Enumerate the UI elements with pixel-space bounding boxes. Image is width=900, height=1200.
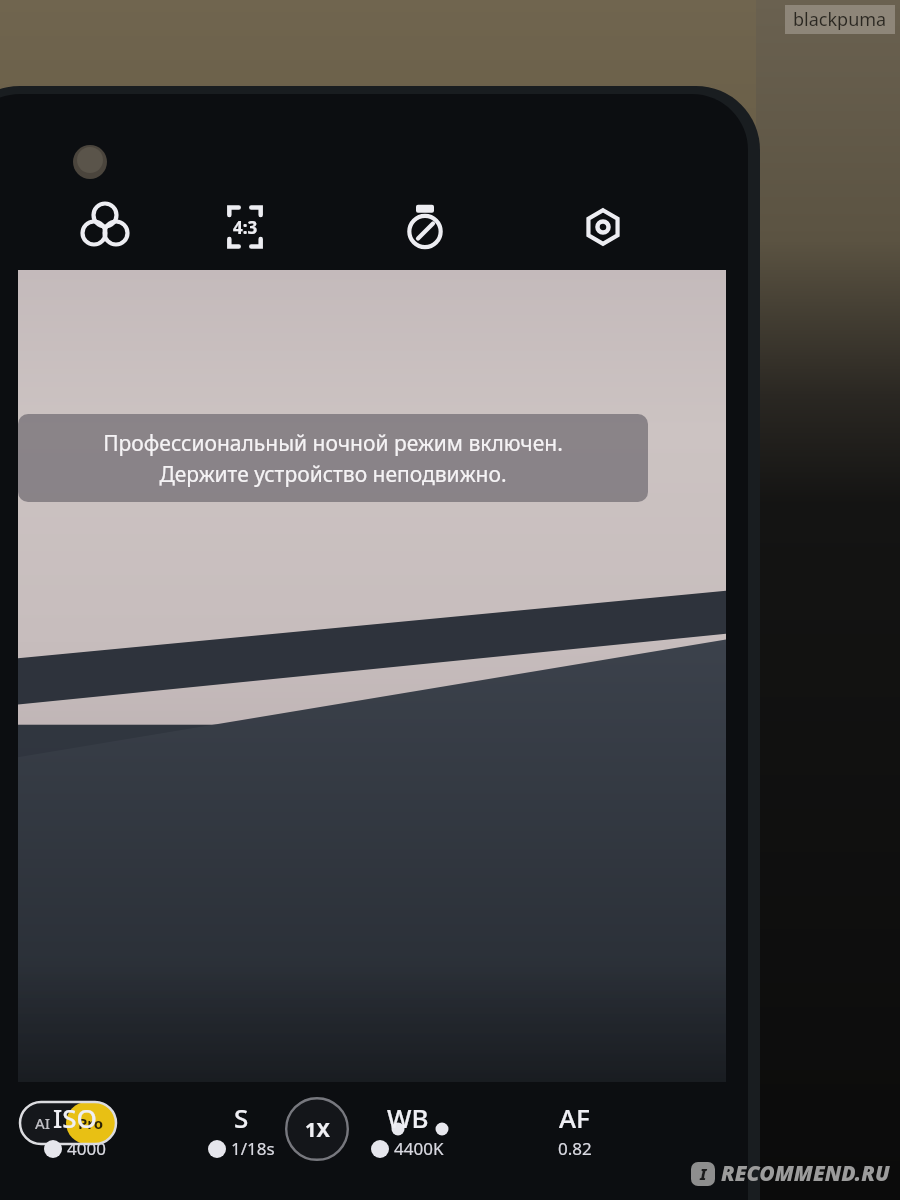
button[interactable]: Settings bbox=[575, 199, 631, 255]
staticText: AF bbox=[559, 1100, 590, 1135]
staticText: 0.82 bbox=[558, 1137, 592, 1160]
staticText: 4000 bbox=[67, 1137, 106, 1160]
staticText: AI bbox=[35, 1113, 51, 1133]
button[interactable]: S bbox=[158, 1094, 324, 1174]
button[interactable]: 1X bbox=[285, 1097, 349, 1161]
staticText: Pro bbox=[78, 1113, 104, 1133]
staticText: blackpuma bbox=[793, 7, 887, 32]
button[interactable]: Timer bbox=[397, 199, 453, 255]
staticText: 4400K bbox=[394, 1137, 444, 1160]
staticText: ISO bbox=[53, 1100, 97, 1135]
button[interactable]: ISO bbox=[0, 1094, 158, 1174]
button[interactable]: Colour filters bbox=[77, 199, 133, 255]
staticText: I bbox=[700, 1164, 707, 1184]
staticText: S bbox=[234, 1100, 249, 1135]
button[interactable]: AF bbox=[491, 1094, 658, 1174]
button[interactable]: AI bbox=[20, 1102, 116, 1144]
staticText: Профессиональный ночной режим включен. Д… bbox=[103, 429, 563, 488]
staticText: WB bbox=[387, 1100, 429, 1135]
staticText: RECOMMEND.RU bbox=[721, 1159, 890, 1188]
staticText: 1/18s bbox=[231, 1137, 275, 1160]
button[interactable]: Aspect ratio 4 by 3 bbox=[217, 199, 273, 255]
staticText: 4:3 bbox=[233, 216, 258, 239]
staticText: 1X bbox=[305, 1116, 330, 1143]
button[interactable]: WB bbox=[324, 1094, 491, 1174]
